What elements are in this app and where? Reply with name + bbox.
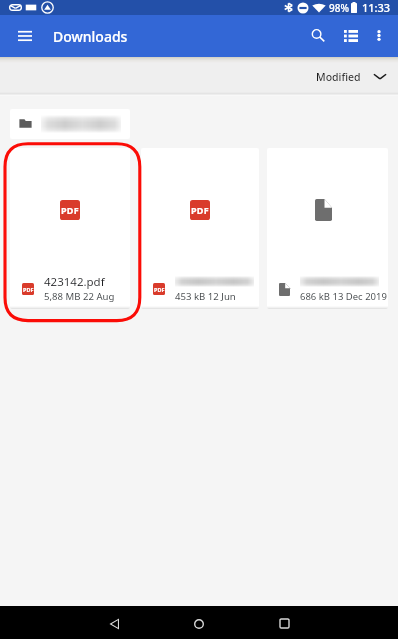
- staticText: 11:33: [362, 0, 391, 15]
- button[interactable]: More options: [358, 15, 398, 56]
- button[interactable]: [10, 109, 130, 139]
- staticText: 686 kB 13 Dec 2019: [300, 290, 387, 303]
- staticText: PDF: [191, 204, 209, 216]
- button[interactable]: Modified: [306, 57, 394, 96]
- button[interactable]: Recents: [264, 610, 304, 637]
- staticText: 98%: [329, 1, 349, 15]
- button[interactable]: Back: [94, 610, 134, 637]
- staticText: 423142.pdf: [44, 274, 105, 290]
- button[interactable]: Open navigation drawer: [4, 15, 45, 56]
- staticText: Modified: [316, 70, 361, 84]
- staticText: PDF: [61, 204, 79, 216]
- button[interactable]: PDF: [141, 148, 259, 309]
- button[interactable]: Home: [179, 610, 219, 637]
- button[interactable]: 686 kB 13 Dec 2019: [267, 148, 388, 309]
- staticText: PDF: [23, 286, 34, 293]
- staticText: Downloads: [53, 27, 128, 46]
- button[interactable]: View as list: [330, 15, 371, 56]
- staticText: 5,88 MB 22 Aug: [44, 290, 115, 303]
- staticText: 453 kB 12 Jun: [175, 290, 236, 303]
- button[interactable]: PDF: [10, 148, 130, 309]
- button[interactable]: Search: [297, 15, 338, 56]
- staticText: PDF: [154, 286, 165, 293]
